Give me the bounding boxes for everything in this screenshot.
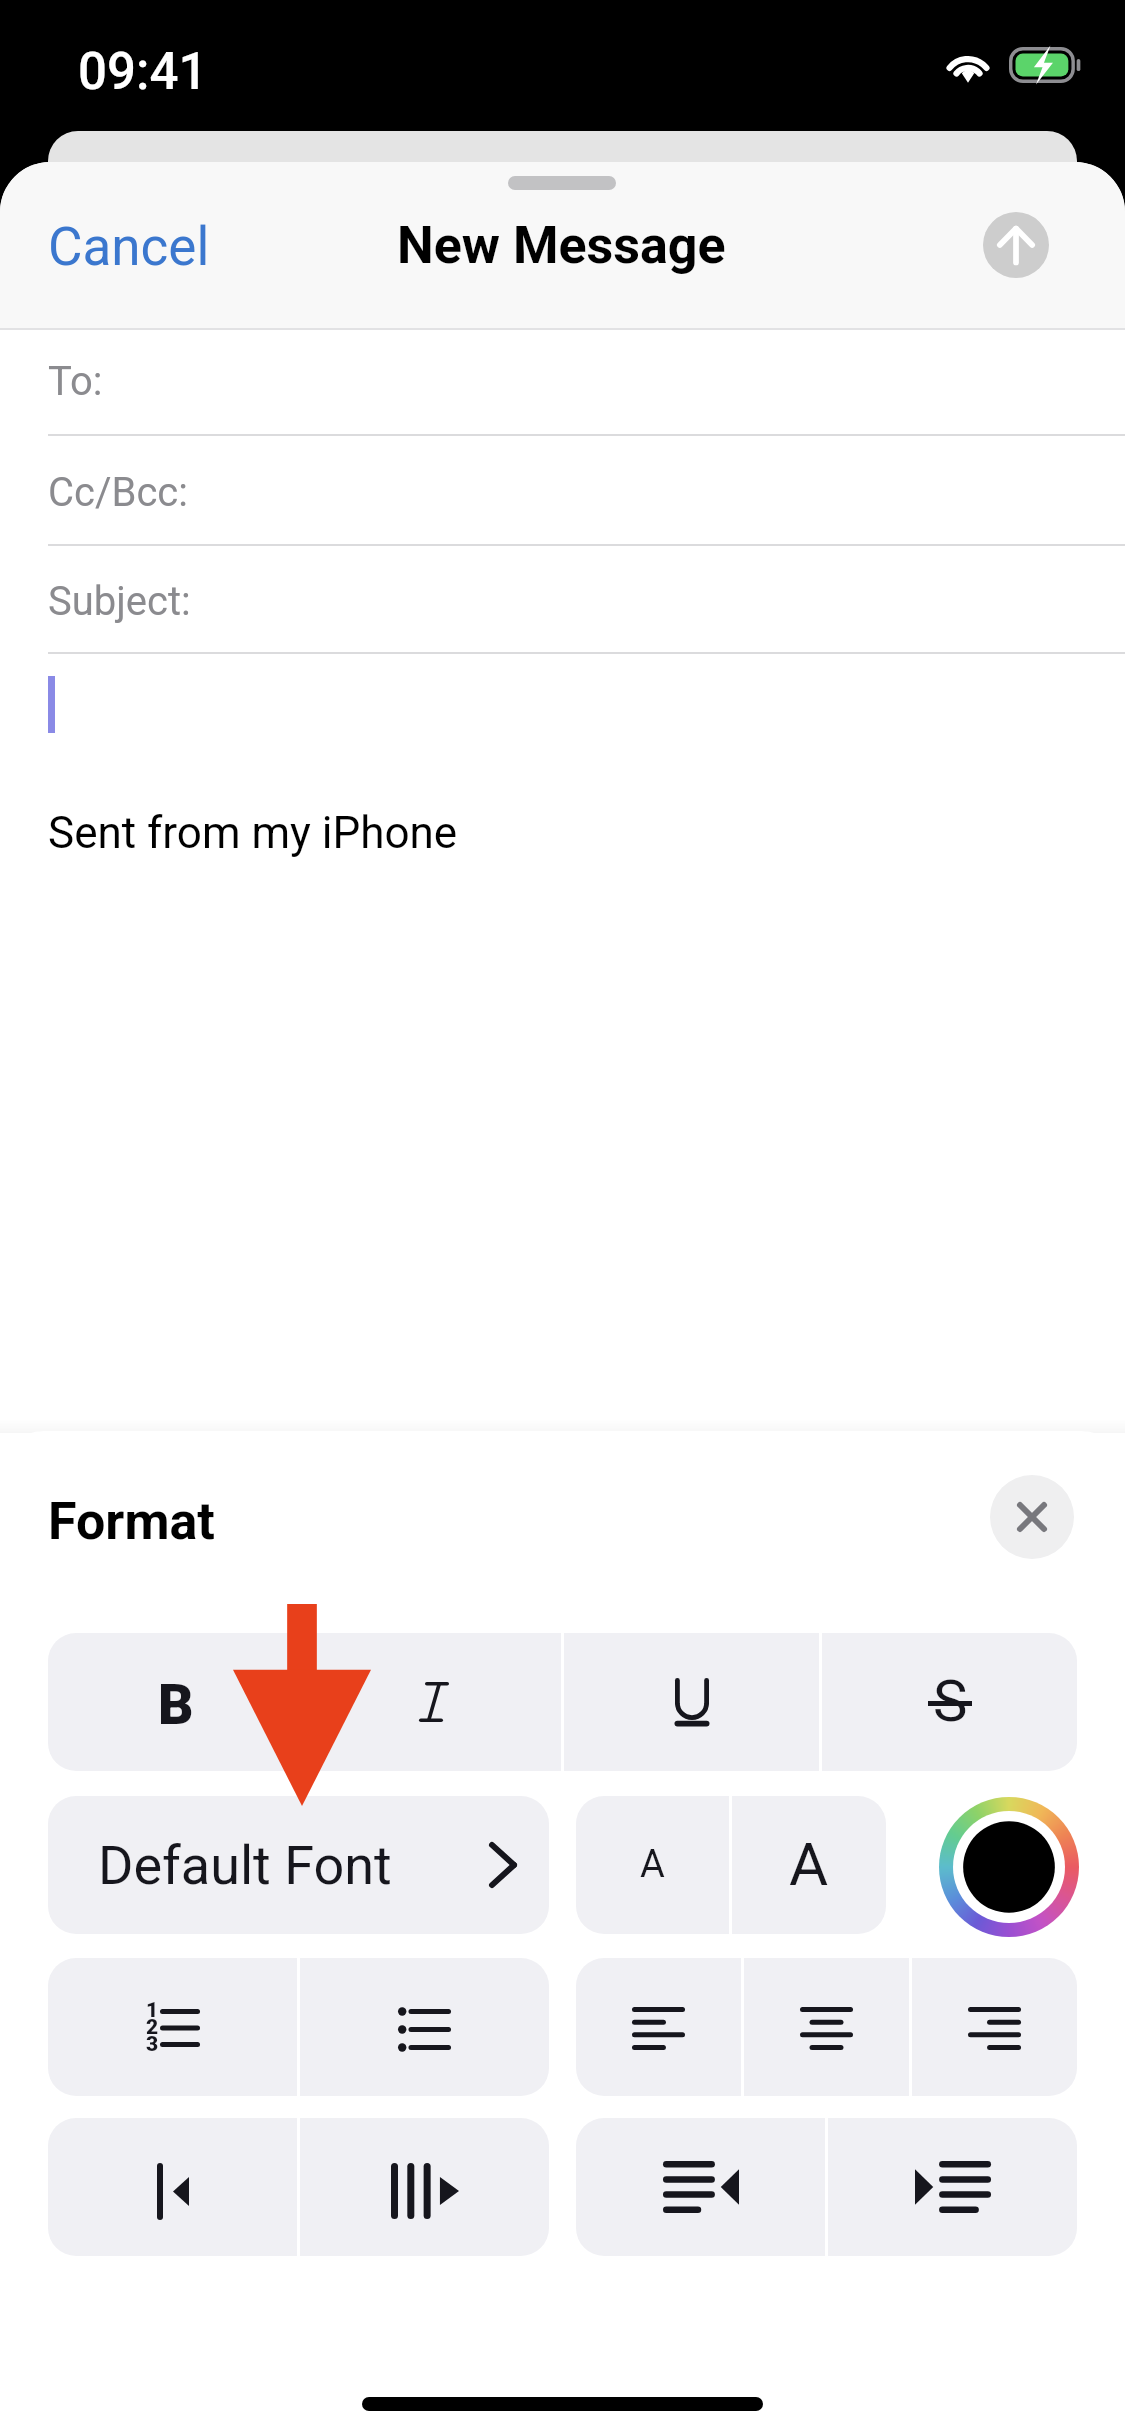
staticText: Format bbox=[48, 1491, 215, 1552]
staticText: S bbox=[933, 1667, 968, 1735]
button[interactable]: Align left bbox=[576, 1958, 741, 2096]
staticText: A bbox=[789, 1829, 829, 1899]
staticText: Default Font bbox=[98, 1834, 392, 1897]
button[interactable]: Italic bbox=[306, 1633, 561, 1771]
button[interactable]: Decrease font size bbox=[576, 1796, 729, 1934]
button[interactable]: Message body bbox=[0, 656, 1125, 916]
button[interactable]: To: bbox=[0, 326, 1125, 436]
button[interactable]: Cancel bbox=[18, 194, 240, 300]
button[interactable]: Align centre bbox=[744, 1958, 909, 2096]
staticText: Cancel bbox=[48, 216, 210, 278]
button[interactable]: Text colour bbox=[939, 1797, 1079, 1937]
staticText: 3 bbox=[146, 2032, 159, 2057]
button[interactable]: Align right bbox=[912, 1958, 1077, 2096]
button[interactable]: Underline bbox=[564, 1633, 819, 1771]
button[interactable]: Increase font size bbox=[732, 1796, 886, 1934]
staticText: 2 bbox=[146, 2015, 159, 2040]
button[interactable]: Numbered list bbox=[48, 1958, 297, 2096]
staticText: Subject: bbox=[48, 578, 191, 625]
button[interactable]: Increase indent bbox=[300, 2118, 549, 2256]
button[interactable]: Decrease indent bbox=[48, 2118, 297, 2256]
staticText: B bbox=[158, 1673, 194, 1737]
button[interactable]: Close bbox=[990, 1475, 1074, 1559]
staticText: 1 bbox=[146, 1998, 159, 2023]
staticText: 09:41 bbox=[78, 42, 208, 102]
staticText: Sent from my iPhone bbox=[48, 807, 458, 859]
staticText: New Message bbox=[397, 215, 726, 276]
button[interactable]: Strikethrough bbox=[822, 1633, 1077, 1771]
button[interactable]: Send bbox=[983, 212, 1049, 278]
staticText: To: bbox=[48, 358, 103, 405]
button[interactable]: Indent list bbox=[828, 2118, 1077, 2256]
button[interactable]: Cc/Bcc: bbox=[0, 436, 1125, 546]
button[interactable]: Default Font bbox=[48, 1796, 549, 1934]
staticText: A bbox=[640, 1842, 665, 1887]
button[interactable]: Bold bbox=[48, 1633, 303, 1771]
button[interactable]: Outdent list bbox=[576, 2118, 825, 2256]
button[interactable]: Subject: bbox=[0, 546, 1125, 654]
staticText: Cc/Bcc: bbox=[48, 469, 188, 516]
button[interactable]: Bulleted list bbox=[300, 1958, 549, 2096]
